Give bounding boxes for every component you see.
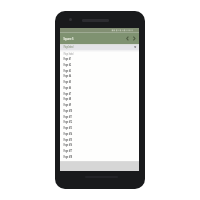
staticText: Page #9	[63, 103, 71, 107]
button[interactable]: Page #9	[60, 102, 139, 108]
staticText: Page #13	[63, 126, 72, 130]
button[interactable]: Page #13	[60, 125, 139, 131]
staticText: Page #6	[63, 86, 71, 89]
staticText: Page #18	[63, 155, 72, 158]
button[interactable]: Page #11	[60, 113, 139, 119]
button[interactable]: Next page	[131, 33, 137, 44]
button[interactable]: Page #1	[60, 56, 139, 62]
staticText: Page #4	[63, 74, 71, 78]
staticText: Page #7	[63, 92, 71, 95]
staticText: Page #16	[63, 143, 72, 147]
staticText: Page #5	[63, 80, 71, 84]
button[interactable]: Page #4	[60, 73, 139, 79]
staticText: Page #3	[63, 69, 71, 72]
staticText: Page #10	[63, 109, 72, 112]
staticText: ( Page Index )	[63, 52, 74, 56]
staticText: Page #14	[63, 132, 72, 135]
button[interactable]: Page #8	[60, 96, 139, 102]
button[interactable]: Page #12	[60, 119, 139, 125]
staticText: Page #15	[63, 138, 72, 141]
staticText: Page #12	[63, 120, 72, 124]
button[interactable]: Page #15	[60, 136, 139, 142]
button[interactable]: ( Page Index )	[60, 52, 139, 56]
button[interactable]: Page #7	[60, 90, 139, 96]
button[interactable]: Page #2	[60, 62, 139, 68]
button[interactable]: Previous page	[124, 33, 131, 44]
staticText: Page #8	[63, 97, 71, 101]
button[interactable]: Page #17	[60, 148, 139, 154]
staticText: Square 5	[63, 36, 73, 41]
staticText: Page #1	[63, 57, 71, 61]
staticText: Page #17	[63, 149, 72, 153]
button[interactable]: Page #10	[60, 108, 139, 114]
button[interactable]: Page #3	[60, 67, 139, 73]
button[interactable]: Page #5	[60, 79, 139, 85]
button[interactable]: ( Page Index )	[60, 44, 139, 50]
staticText: Page #11	[63, 115, 72, 118]
staticText: Page #2	[63, 63, 71, 66]
button[interactable]: Page #14	[60, 131, 139, 137]
staticText: ( Page Index )	[63, 45, 74, 49]
button[interactable]: Page #16	[60, 142, 139, 148]
button[interactable]: Page #6	[60, 85, 139, 91]
button[interactable]: Page #18	[60, 154, 139, 160]
